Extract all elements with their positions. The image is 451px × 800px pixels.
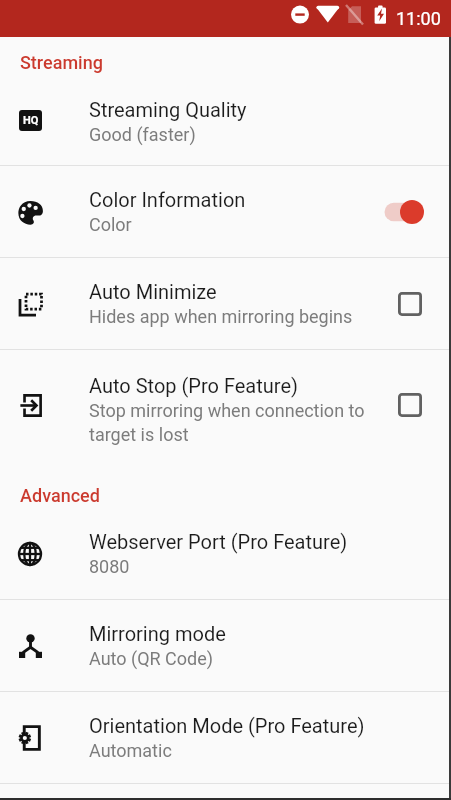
button[interactable]: Orientation Mode (Pro Feature) (0, 692, 451, 783)
button[interactable]: Color Information (0, 166, 451, 257)
staticText: HQ (23, 114, 39, 127)
button[interactable]: Webserver Port (Pro Feature) (0, 508, 451, 599)
button[interactable]: Auto Stop (Pro Feature) (0, 350, 451, 468)
staticText: Hides app when mirroring begins (89, 306, 353, 327)
staticText: Advanced (20, 485, 100, 506)
staticText: 11:00 (396, 8, 441, 29)
button[interactable]: Mirroring mode (0, 600, 451, 691)
button[interactable]: HQ (0, 77, 451, 165)
staticText: Stop mirroring when connection to target… (89, 400, 367, 445)
staticText: Good (faster) (89, 124, 196, 145)
button[interactable]: Color information toggle (384, 195, 436, 229)
staticText: Auto Minimize (89, 280, 217, 303)
button[interactable]: Auto Minimize (0, 258, 451, 349)
staticText: Color (89, 214, 132, 235)
staticText: Auto Stop (Pro Feature) (89, 374, 298, 397)
staticText: Webserver Port (Pro Feature) (89, 530, 348, 553)
staticText: Auto (QR Code) (89, 648, 214, 669)
button[interactable]: Checkbox (390, 385, 430, 425)
staticText: Orientation Mode (Pro Feature) (89, 714, 365, 737)
staticText: Streaming Quality (89, 98, 247, 121)
button[interactable]: Checkbox (390, 284, 430, 324)
staticText: Color Information (89, 188, 246, 211)
staticText: Automatic (89, 740, 172, 761)
staticText: Mirroring mode (89, 622, 226, 645)
staticText: Streaming (20, 52, 103, 73)
staticText: 8080 (89, 556, 130, 577)
